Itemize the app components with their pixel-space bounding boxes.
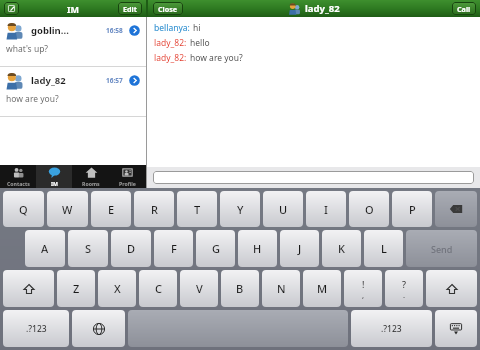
button[interactable]: Rooms (72, 165, 109, 188)
button[interactable]: .?123 (3, 310, 69, 347)
button[interactable]: V (180, 270, 218, 307)
staticText: Rooms (82, 180, 100, 187)
button[interactable]: S (68, 230, 108, 267)
staticText: Contacts (7, 180, 30, 187)
staticText: P (409, 202, 416, 217)
staticText: goblin... (31, 24, 106, 37)
button[interactable]: I (306, 191, 346, 227)
staticText: F (171, 241, 177, 256)
button[interactable]: Change language (72, 310, 125, 347)
button[interactable]: U (263, 191, 303, 227)
staticText: Q (19, 202, 28, 217)
staticText: how are you? (190, 52, 243, 64)
staticText: C (155, 281, 162, 296)
button[interactable]: K (322, 230, 361, 267)
staticText: lady_82 (31, 74, 106, 87)
button[interactable]: Q (3, 191, 44, 227)
staticText: Edit (123, 4, 137, 14)
button[interactable]: M (303, 270, 341, 307)
button[interactable]: Edit (118, 2, 142, 15)
button[interactable]: T (177, 191, 217, 227)
button[interactable]: Backspace (435, 191, 477, 227)
button[interactable]: IM (36, 165, 72, 188)
staticText: B (236, 281, 244, 296)
button[interactable]: R (134, 191, 174, 227)
staticText: Z (73, 281, 80, 296)
button[interactable]: H (238, 230, 277, 267)
button[interactable]: Message input (153, 171, 474, 184)
staticText: hi (193, 22, 201, 34)
staticText: 16:57 (106, 76, 123, 85)
staticText: I (324, 202, 328, 217)
button[interactable]: D (111, 230, 151, 267)
button[interactable]: Profile (109, 165, 146, 188)
staticText: 16:58 (106, 26, 123, 35)
staticText: R (151, 202, 158, 217)
button[interactable]: N (262, 270, 300, 307)
staticText: IM (51, 180, 58, 187)
button[interactable]: Call (452, 2, 476, 15)
staticText: hello (190, 37, 210, 49)
staticText: E (108, 202, 115, 217)
staticText: lady_82: (154, 52, 187, 64)
button[interactable]: Contacts (0, 165, 36, 188)
staticText: Profile (119, 180, 136, 187)
button[interactable]: Y (220, 191, 260, 227)
staticText: L (381, 241, 387, 256)
button[interactable]: A (25, 230, 65, 267)
staticText: N (277, 281, 286, 296)
button[interactable]: C (139, 270, 177, 307)
button[interactable]: Space (128, 310, 348, 347)
staticText: bellanya: (154, 22, 190, 34)
staticText: .?123 (381, 323, 402, 335)
button[interactable]: Hide keyboard (435, 310, 477, 347)
button[interactable]: .?123 (351, 310, 432, 347)
button[interactable]: G (196, 230, 235, 267)
button[interactable]: W (47, 191, 88, 227)
staticText: lady_82: (154, 37, 187, 49)
staticText: U (279, 202, 288, 217)
staticText: H (253, 241, 262, 256)
button[interactable]: Send (406, 230, 477, 267)
button[interactable]: Open conversation with lady_82 (129, 75, 140, 86)
staticText: ? (402, 278, 407, 290)
button[interactable]: Z (57, 270, 95, 307)
staticText: V (196, 281, 203, 296)
staticText: lady_82 (305, 2, 340, 15)
staticText: X (114, 281, 121, 296)
button[interactable]: E (91, 191, 131, 227)
button[interactable]: goblin... (0, 17, 146, 67)
staticText: Send (431, 243, 453, 255)
button[interactable]: F (154, 230, 193, 267)
button[interactable]: B (221, 270, 259, 307)
button[interactable]: O (349, 191, 389, 227)
staticText: A (41, 241, 49, 256)
staticText: T (194, 202, 201, 217)
staticText: , (362, 290, 365, 300)
button[interactable]: ! (344, 270, 382, 307)
button[interactable]: J (280, 230, 319, 267)
staticText: IM (67, 3, 79, 15)
staticText: Close (158, 4, 178, 14)
button[interactable]: Shift (426, 270, 477, 307)
staticText: what's up? (6, 43, 49, 55)
button[interactable]: ? (385, 270, 423, 307)
button[interactable]: Open conversation with goblin... (129, 25, 140, 36)
button[interactable]: X (98, 270, 136, 307)
button[interactable]: L (364, 230, 403, 267)
staticText: S (85, 241, 92, 256)
staticText: how are you? (6, 93, 59, 105)
button[interactable]: Shift (3, 270, 54, 307)
staticText: G (212, 241, 220, 256)
button[interactable]: Close (153, 2, 183, 15)
staticText: .?123 (26, 323, 47, 335)
staticText: ! (362, 278, 365, 290)
button[interactable]: Compose message (4, 2, 19, 15)
staticText: O (365, 202, 374, 217)
staticText: K (338, 241, 345, 256)
button[interactable]: lady_82 (0, 67, 146, 117)
staticText: W (62, 202, 73, 217)
button[interactable]: P (392, 191, 432, 227)
staticText: J (298, 241, 302, 256)
staticText: Y (237, 202, 244, 217)
